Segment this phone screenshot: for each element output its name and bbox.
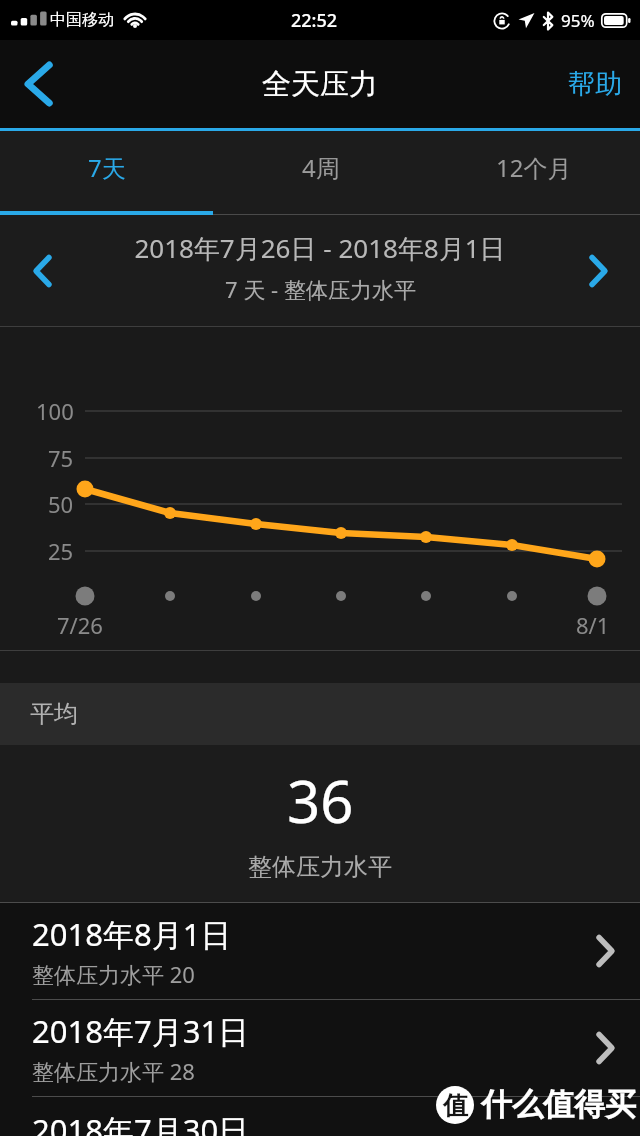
- staticText: 2018年8月1日: [32, 913, 232, 955]
- button[interactable]: 7天: [0, 131, 214, 215]
- button[interactable]: 12个月: [427, 131, 640, 215]
- button[interactable]: 返回: [0, 40, 76, 128]
- staticText: 36: [287, 761, 354, 840]
- button[interactable]: 下一周: [556, 215, 640, 326]
- staticText: 中国移动: [50, 10, 114, 30]
- staticText: 7天: [88, 151, 126, 184]
- staticText: 95%: [561, 9, 595, 32]
- staticText: 75: [48, 443, 74, 473]
- staticText: 7 天 - 整体压力水平: [225, 274, 416, 304]
- staticText: 平均: [30, 699, 78, 729]
- staticText: 值: [443, 1090, 468, 1121]
- staticText: 100: [36, 396, 74, 426]
- staticText: 22:52: [291, 8, 338, 33]
- staticText: 8/1: [576, 610, 610, 640]
- staticText: 全天压力: [262, 66, 378, 103]
- staticText: 12个月: [496, 151, 572, 184]
- button[interactable]: 4周: [214, 131, 427, 215]
- staticText: 4周: [302, 151, 340, 184]
- staticText: 帮助: [568, 67, 622, 101]
- staticText: 25: [48, 536, 74, 566]
- button[interactable]: 上一周: [0, 215, 84, 326]
- staticText: 2018年7月31日: [32, 1010, 250, 1052]
- button[interactable]: 帮助: [550, 40, 640, 128]
- staticText: 2018年7月26日 - 2018年8月1日: [134, 230, 506, 266]
- staticText: 2018年7月30日: [32, 1109, 250, 1136]
- button[interactable]: 2018年8月1日: [0, 903, 640, 999]
- staticText: 什么值得买: [481, 1085, 636, 1124]
- staticText: 50: [48, 489, 74, 519]
- button[interactable]: 2018年7月30日: [0, 1097, 640, 1136]
- staticText: 7/26: [57, 610, 103, 640]
- button[interactable]: 2018年7月31日: [0, 1000, 640, 1096]
- staticText: 整体压力水平 28: [32, 1056, 195, 1086]
- staticText: 整体压力水平: [248, 852, 392, 882]
- staticText: 整体压力水平 20: [32, 959, 195, 989]
